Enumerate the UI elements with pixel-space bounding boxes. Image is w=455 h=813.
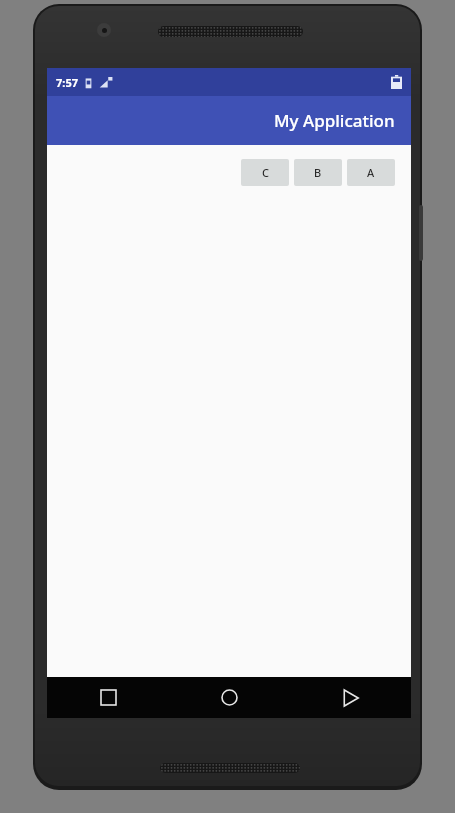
staticText: My Application <box>274 109 395 132</box>
staticText: A <box>367 165 375 180</box>
button[interactable]: A <box>347 159 395 186</box>
button[interactable]: Recent apps <box>47 677 169 718</box>
button[interactable]: B <box>294 159 342 186</box>
staticText: C <box>262 165 269 180</box>
button[interactable]: Back <box>290 677 411 718</box>
staticText: 7:57 <box>56 75 78 90</box>
button[interactable]: C <box>241 159 289 186</box>
staticText: B <box>314 165 322 180</box>
button[interactable]: Home <box>169 677 290 718</box>
